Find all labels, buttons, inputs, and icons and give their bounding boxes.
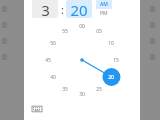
staticText: 20 [70, 0, 88, 18]
button[interactable]: AM [96, 0, 112, 9]
button[interactable]: 3 [32, 0, 58, 18]
staticText: 25 [96, 86, 102, 93]
staticText: 50 [50, 40, 56, 47]
staticText: : [61, 2, 64, 17]
staticText: PM [100, 10, 108, 17]
staticText: 05 [96, 28, 102, 35]
button[interactable]: PM [96, 9, 112, 18]
staticText: 20 [108, 74, 114, 81]
staticText: 30 [79, 91, 85, 98]
staticText: AM [100, 1, 108, 8]
staticText: 15 [113, 57, 119, 64]
button[interactable]: 00 [34, 22, 130, 98]
staticText: 3 [41, 0, 50, 18]
staticText: 55 [62, 28, 68, 35]
staticText: 45 [45, 57, 51, 64]
button[interactable]: Switch to text input [30, 102, 44, 116]
staticText: 35 [62, 86, 68, 93]
staticText: 40 [50, 74, 56, 81]
staticText: 00 [79, 23, 85, 30]
staticText: 10 [108, 40, 114, 47]
button[interactable]: 20 [66, 0, 92, 18]
